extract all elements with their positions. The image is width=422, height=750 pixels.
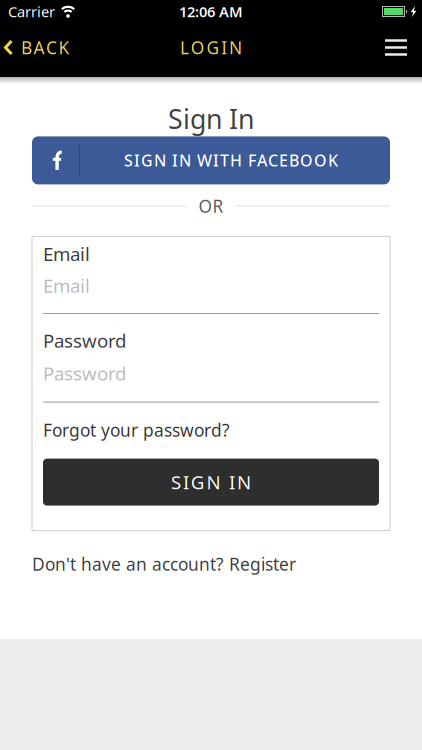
button[interactable]: BACK <box>0 26 69 69</box>
button[interactable]: Menu <box>385 27 422 68</box>
staticText: Carrier <box>8 2 55 21</box>
button[interactable]: Password <box>43 353 379 403</box>
staticText: BACK <box>21 36 69 59</box>
staticText: OR <box>198 194 223 217</box>
staticText: Password <box>43 361 126 386</box>
button[interactable]: SIGN IN WITH FACEBOOK <box>32 136 390 184</box>
staticText: SIGN IN <box>171 470 251 494</box>
staticText: Sign In <box>168 101 254 136</box>
button[interactable]: Forgot your password? <box>43 403 230 442</box>
button[interactable]: Register <box>229 553 296 576</box>
staticText: Email <box>43 273 90 298</box>
button[interactable]: Email <box>43 266 379 314</box>
staticText: Forgot your password? <box>43 419 230 442</box>
staticText: SIGN IN WITH FACEBOOK <box>124 150 338 171</box>
staticText: Register <box>229 553 296 576</box>
staticText: Don't have an account? <box>32 553 224 576</box>
staticText: Email <box>43 241 90 266</box>
staticText: Password <box>43 328 126 353</box>
button[interactable]: SIGN IN <box>43 459 379 506</box>
staticText: 12:06 AM <box>179 2 243 21</box>
staticText: LOGIN <box>180 36 242 59</box>
